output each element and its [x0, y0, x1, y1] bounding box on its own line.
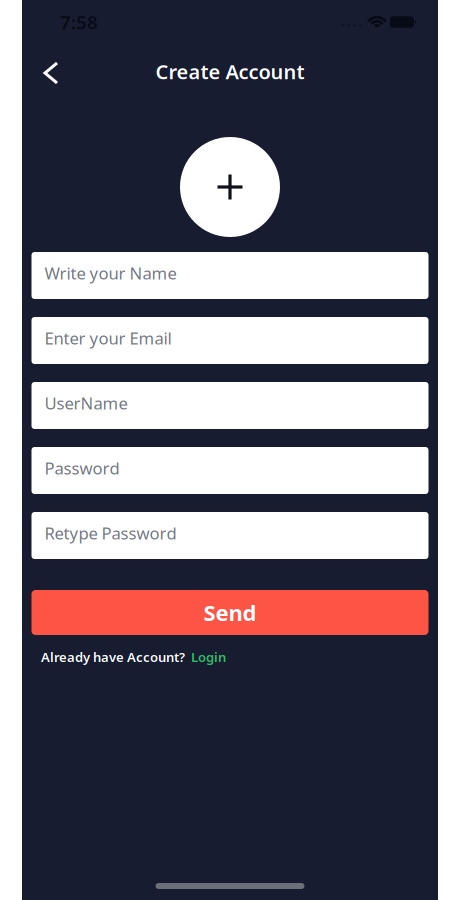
staticText: Retype Password — [44, 522, 176, 544]
button[interactable]: Retype Password — [31, 512, 428, 559]
button[interactable]: Write your Name — [31, 252, 428, 299]
staticText: UserName — [44, 392, 127, 414]
button[interactable]: UserName — [31, 382, 428, 429]
staticText: Password — [44, 457, 119, 479]
staticText: Send — [203, 597, 256, 627]
staticText: Already have Account? — [41, 648, 185, 666]
staticText: Login — [191, 648, 226, 666]
button[interactable]: Back — [22, 55, 73, 91]
staticText: Write your Name — [44, 262, 176, 284]
button[interactable]: Password — [31, 447, 428, 494]
staticText: Create Account — [155, 58, 304, 85]
staticText: Enter your Email — [44, 327, 171, 349]
button[interactable]: Login — [191, 648, 226, 666]
staticText: 7:58 — [60, 10, 98, 34]
button[interactable]: Enter your Email — [31, 317, 428, 364]
button[interactable]: Add photo — [180, 137, 280, 237]
button[interactable]: Send — [31, 590, 428, 635]
